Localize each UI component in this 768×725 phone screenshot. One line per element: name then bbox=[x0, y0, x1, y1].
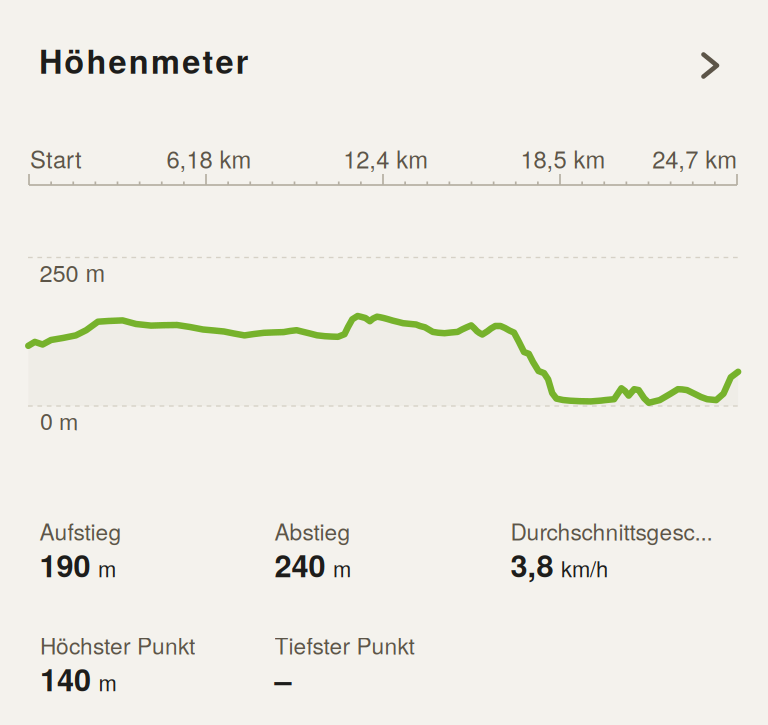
staticText: km/h bbox=[561, 552, 608, 583]
staticText: m bbox=[151, 37, 180, 84]
button[interactable]: Höchster Punkt bbox=[0, 0, 768, 725]
staticText: – bbox=[275, 657, 292, 701]
staticText: 190 bbox=[39, 543, 90, 587]
button[interactable]: Aufstieg bbox=[0, 0, 768, 725]
staticText: n bbox=[129, 37, 149, 84]
staticText: Durchschnittsgesc... bbox=[510, 514, 712, 547]
staticText: m bbox=[333, 552, 351, 583]
staticText: Start bbox=[30, 141, 82, 175]
staticText: 250 m bbox=[39, 255, 105, 289]
staticText: Höchster Punkt bbox=[40, 629, 195, 661]
staticText: m bbox=[98, 552, 116, 583]
staticText: 6,18 km bbox=[167, 141, 252, 175]
staticText: m bbox=[98, 666, 116, 698]
staticText: e bbox=[216, 37, 234, 84]
button[interactable]: Durchschnittsgesc... bbox=[0, 0, 768, 725]
staticText: e bbox=[182, 37, 200, 84]
staticText: 12,4 km bbox=[343, 141, 428, 175]
staticText: 0 m bbox=[40, 403, 78, 436]
staticText: 240 bbox=[275, 543, 326, 587]
button[interactable]: Abstieg bbox=[0, 0, 768, 725]
staticText: ö bbox=[64, 37, 84, 84]
staticText: h bbox=[86, 37, 106, 84]
staticText: e bbox=[109, 37, 127, 84]
staticText: t bbox=[202, 37, 213, 84]
staticText: Abstieg bbox=[275, 514, 351, 547]
staticText: H bbox=[39, 37, 62, 84]
staticText: Tiefster Punkt bbox=[275, 629, 415, 661]
staticText: 18,5 km bbox=[521, 141, 606, 175]
staticText: 140 bbox=[40, 657, 91, 701]
staticText: r bbox=[236, 37, 249, 84]
button[interactable]: H bbox=[0, 0, 768, 725]
staticText: 24,7 km bbox=[652, 141, 737, 175]
button[interactable]: Tiefster Punkt bbox=[0, 0, 768, 725]
staticText: Aufstieg bbox=[39, 514, 121, 547]
staticText: 3,8 bbox=[510, 543, 553, 587]
